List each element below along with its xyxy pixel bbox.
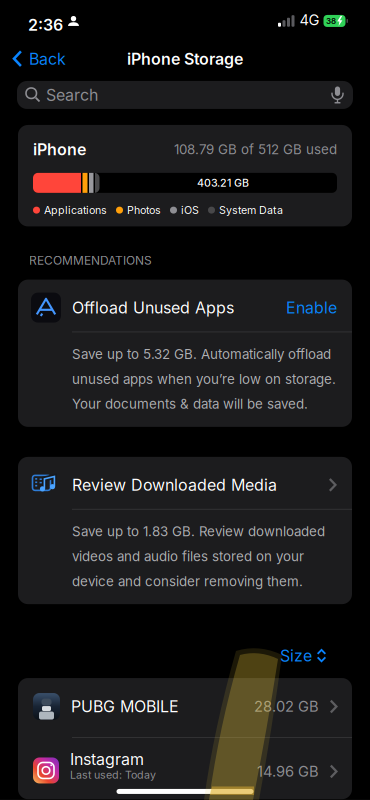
staticText: iOS	[181, 204, 199, 216]
staticText: Back	[29, 49, 66, 68]
staticText: Offload Unused Apps	[72, 298, 234, 317]
staticText: 108.79 GB of 512 GB used	[174, 141, 337, 157]
staticText: 2:36	[28, 15, 63, 34]
staticText: Applications	[44, 204, 107, 216]
staticText: iPhone	[33, 140, 86, 159]
button[interactable]: Search	[17, 81, 353, 109]
button[interactable]: Offload Unused Apps	[18, 280, 352, 332]
staticText: Size	[280, 646, 312, 665]
button[interactable]: PUBG MOBILE	[18, 678, 352, 737]
button[interactable]: Size	[280, 646, 326, 665]
staticText: Instagram	[70, 750, 144, 769]
staticText: Search	[46, 85, 98, 104]
staticText: 28.02 GB	[254, 698, 319, 715]
staticText: Save up to 5.32 GB. Automatically offloa…	[72, 346, 336, 412]
staticText: System Data	[219, 204, 283, 216]
staticText: Enable	[286, 298, 337, 317]
staticText: Review Downloaded Media	[72, 475, 277, 494]
staticText: 38	[326, 16, 336, 26]
staticText: RECOMMENDATIONS	[29, 253, 152, 268]
staticText: Save up to 1.83 GB. Review downloaded vi…	[72, 524, 325, 589]
staticText: Photos	[127, 204, 161, 216]
button[interactable]: Review Downloaded Media	[18, 457, 352, 509]
staticText: 14.96 GB	[257, 763, 319, 780]
button[interactable]: Back	[0, 49, 66, 68]
staticText: Last used: Today	[70, 769, 156, 781]
button[interactable]: Instagram	[18, 738, 352, 799]
staticText: 403.21 GB	[197, 176, 249, 189]
staticText: 4G	[299, 11, 319, 29]
staticText: PUBG MOBILE	[71, 697, 179, 716]
staticText: iPhone Storage	[127, 49, 243, 68]
